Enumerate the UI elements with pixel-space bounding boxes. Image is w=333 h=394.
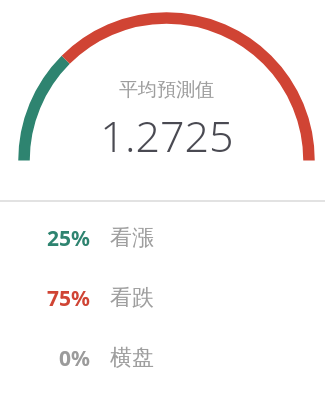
button[interactable]: 0% — [0, 342, 333, 374]
staticText: 横盘 — [110, 344, 154, 372]
staticText: 1.2725 — [100, 106, 234, 165]
staticText: 平均預測值 — [119, 78, 214, 102]
staticText: 看漲 — [110, 224, 154, 252]
staticText: 75% — [47, 284, 90, 313]
staticText: 看跌 — [110, 284, 154, 312]
button[interactable]: 25% — [0, 222, 333, 254]
button[interactable]: 平均預測值儀表 — [0, 0, 333, 200]
staticText: 25% — [47, 224, 90, 253]
button[interactable]: 75% — [0, 282, 333, 314]
staticText: 0% — [59, 344, 90, 373]
